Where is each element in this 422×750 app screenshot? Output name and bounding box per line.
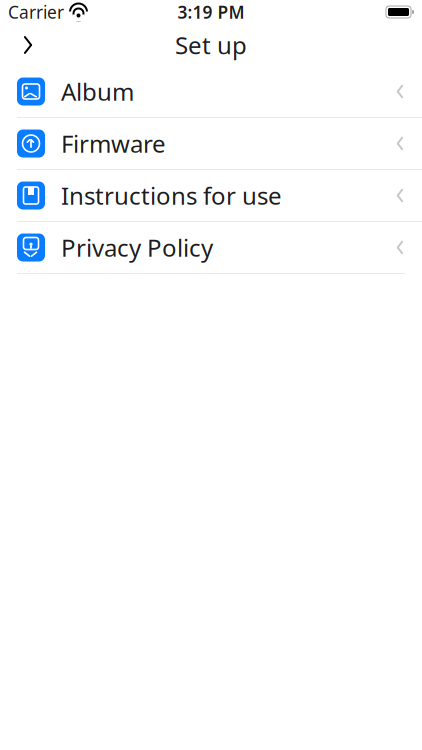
button[interactable]: Firmware — [0, 118, 422, 169]
button[interactable]: Instructions for use — [0, 170, 422, 221]
staticText: Carrier — [8, 0, 64, 23]
button[interactable]: Album — [0, 66, 422, 117]
staticText: Set up — [175, 29, 247, 61]
staticText: Instructions for use — [61, 180, 282, 211]
staticText: 3:19 PM — [177, 0, 244, 23]
button[interactable]: Back — [6, 25, 50, 65]
staticText: Privacy Policy — [61, 232, 213, 263]
staticText: Album — [61, 76, 134, 107]
staticText: Firmware — [61, 128, 166, 159]
button[interactable]: Privacy Policy — [0, 222, 422, 273]
